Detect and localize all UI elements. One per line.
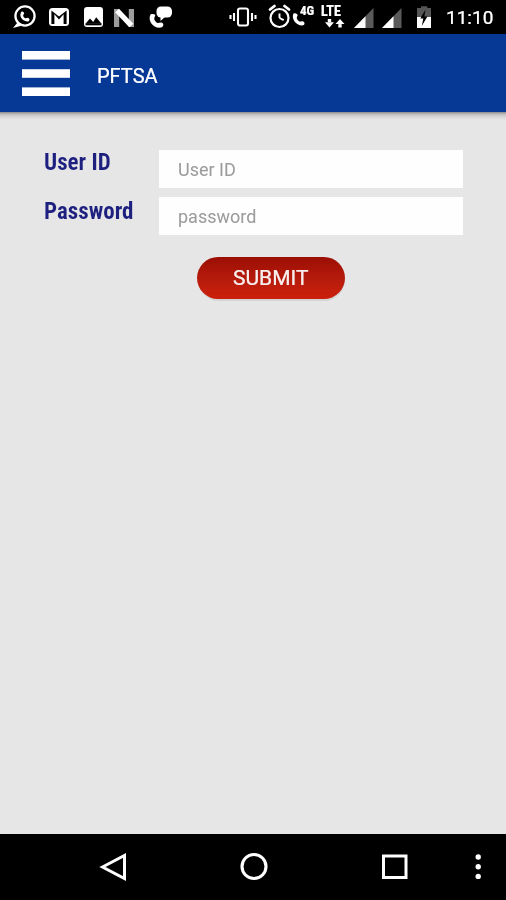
- button[interactable]: Back: [89, 843, 137, 891]
- button[interactable]: password: [159, 197, 463, 235]
- staticText: password: [178, 206, 257, 227]
- staticText: 11:10: [446, 6, 494, 28]
- button[interactable]: Home: [230, 843, 278, 891]
- button[interactable]: Recent apps: [370, 843, 418, 891]
- staticText: User ID: [44, 149, 111, 176]
- staticText: Password: [44, 198, 134, 225]
- button[interactable]: More options: [458, 843, 498, 891]
- staticText: SUBMIT: [233, 266, 309, 291]
- staticText: PFTSA: [97, 64, 158, 87]
- button[interactable]: SUBMIT: [197, 257, 345, 299]
- button[interactable]: User ID: [159, 150, 463, 188]
- staticText: LTE: [321, 3, 341, 19]
- staticText: 4G: [300, 3, 315, 18]
- staticText: User ID: [178, 159, 236, 180]
- button[interactable]: Open navigation menu: [8, 44, 84, 102]
